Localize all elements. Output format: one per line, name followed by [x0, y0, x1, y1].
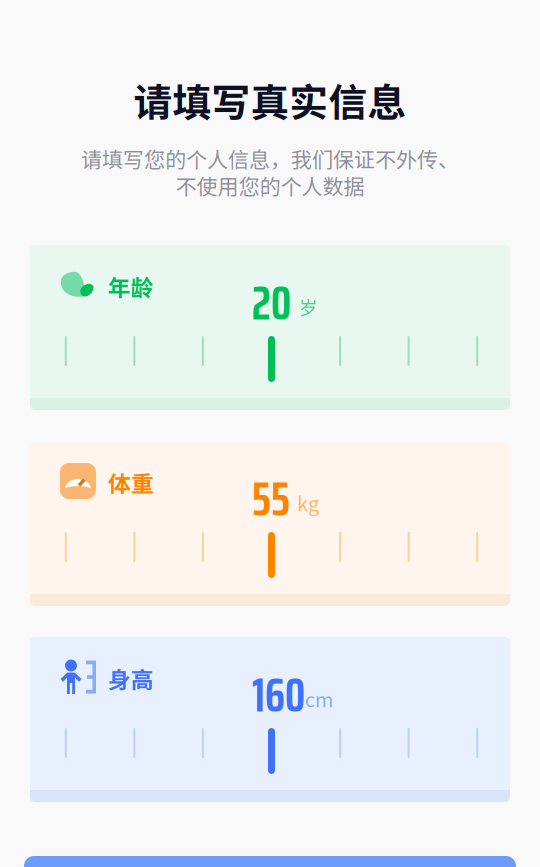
staticText: 55: [252, 461, 290, 537]
staticText: 体重: [108, 466, 154, 499]
staticText: 年龄: [108, 270, 154, 303]
staticText: 请填写您的个人信息，我们保证不外传、: [81, 143, 459, 173]
button[interactable]: 下一步: [24, 856, 516, 867]
staticText: 不使用您的个人数据: [175, 170, 364, 200]
staticText: 岁: [299, 293, 318, 320]
staticText: 160: [252, 657, 305, 733]
staticText: 身高: [108, 662, 154, 695]
staticText: kg: [297, 488, 319, 517]
staticText: 20: [252, 265, 291, 341]
staticText: cm: [305, 684, 334, 713]
staticText: 请填写真实信息: [133, 72, 406, 128]
